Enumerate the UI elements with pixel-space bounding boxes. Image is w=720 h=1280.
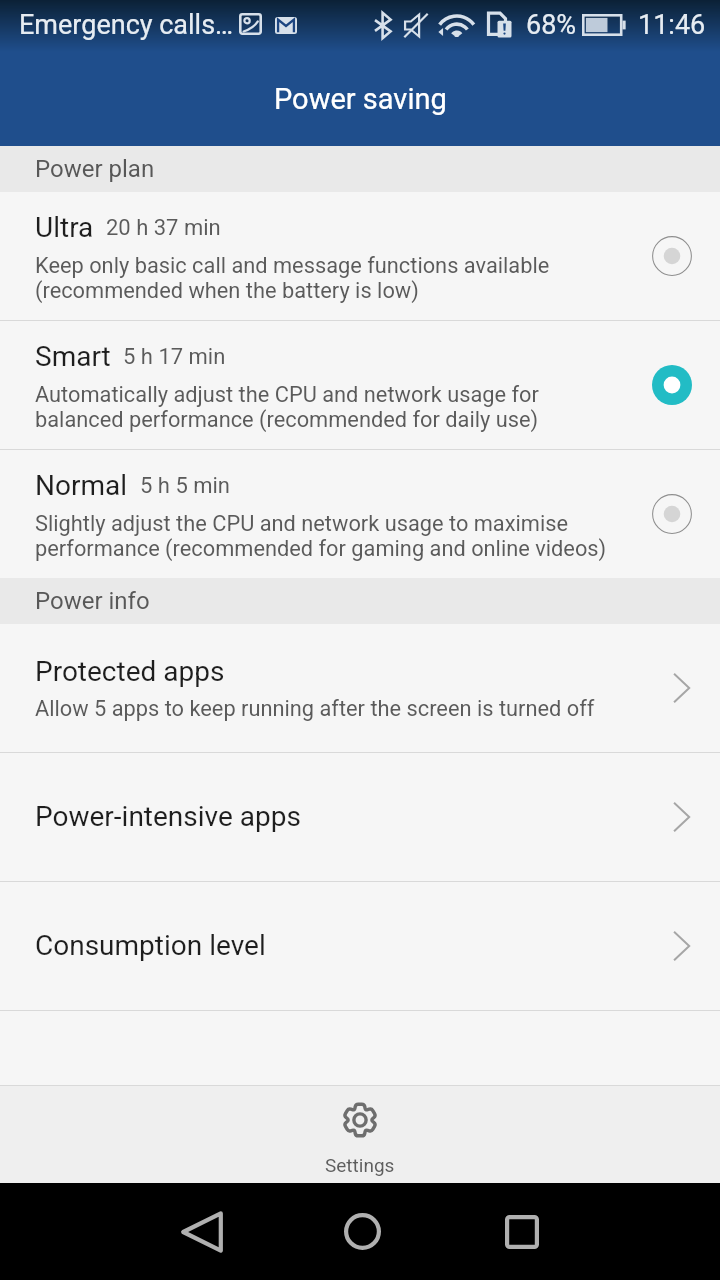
button[interactable]: Recents: [482, 1183, 562, 1280]
button[interactable]: Home: [322, 1183, 402, 1280]
staticText: 68%: [526, 9, 577, 41]
button[interactable]: Consumption level: [0, 882, 720, 1010]
button[interactable]: Settings: [270, 1086, 450, 1183]
staticText: Power info: [35, 587, 150, 615]
staticText: 5 h 5 min: [140, 473, 231, 499]
button[interactable]: Selected: [648, 361, 696, 409]
staticText: Settings: [325, 1154, 395, 1176]
button[interactable]: Power-intensive apps: [0, 753, 720, 881]
staticText: Keep only basic call and message functio…: [35, 253, 550, 303]
button[interactable]: Select: [648, 490, 696, 538]
button[interactable]: Select: [648, 232, 696, 280]
staticText: Smart: [35, 340, 111, 373]
staticText: Ultra: [35, 211, 94, 244]
button[interactable]: Smart: [0, 321, 720, 449]
staticText: Allow 5 apps to keep running after the s…: [35, 696, 595, 722]
staticText: Slightly adjust the CPU and network usag…: [35, 511, 607, 561]
staticText: 11:46: [638, 9, 706, 41]
staticText: 5 h 17 min: [123, 344, 226, 370]
button[interactable]: Back: [162, 1183, 242, 1280]
staticText: Power plan: [35, 155, 155, 183]
staticText: Automatically adjust the CPU and network…: [35, 382, 539, 432]
button[interactable]: Normal: [0, 450, 720, 578]
staticText: Consumption level: [35, 929, 266, 962]
staticText: Protected apps: [35, 655, 225, 688]
button[interactable]: Protected apps: [0, 624, 720, 752]
staticText: Emergency calls…: [19, 9, 234, 41]
staticText: 20 h 37 min: [106, 215, 221, 241]
staticText: Normal: [35, 469, 128, 502]
staticText: Power-intensive apps: [35, 800, 301, 833]
button[interactable]: Ultra: [0, 192, 720, 320]
staticText: Power saving: [274, 82, 447, 116]
